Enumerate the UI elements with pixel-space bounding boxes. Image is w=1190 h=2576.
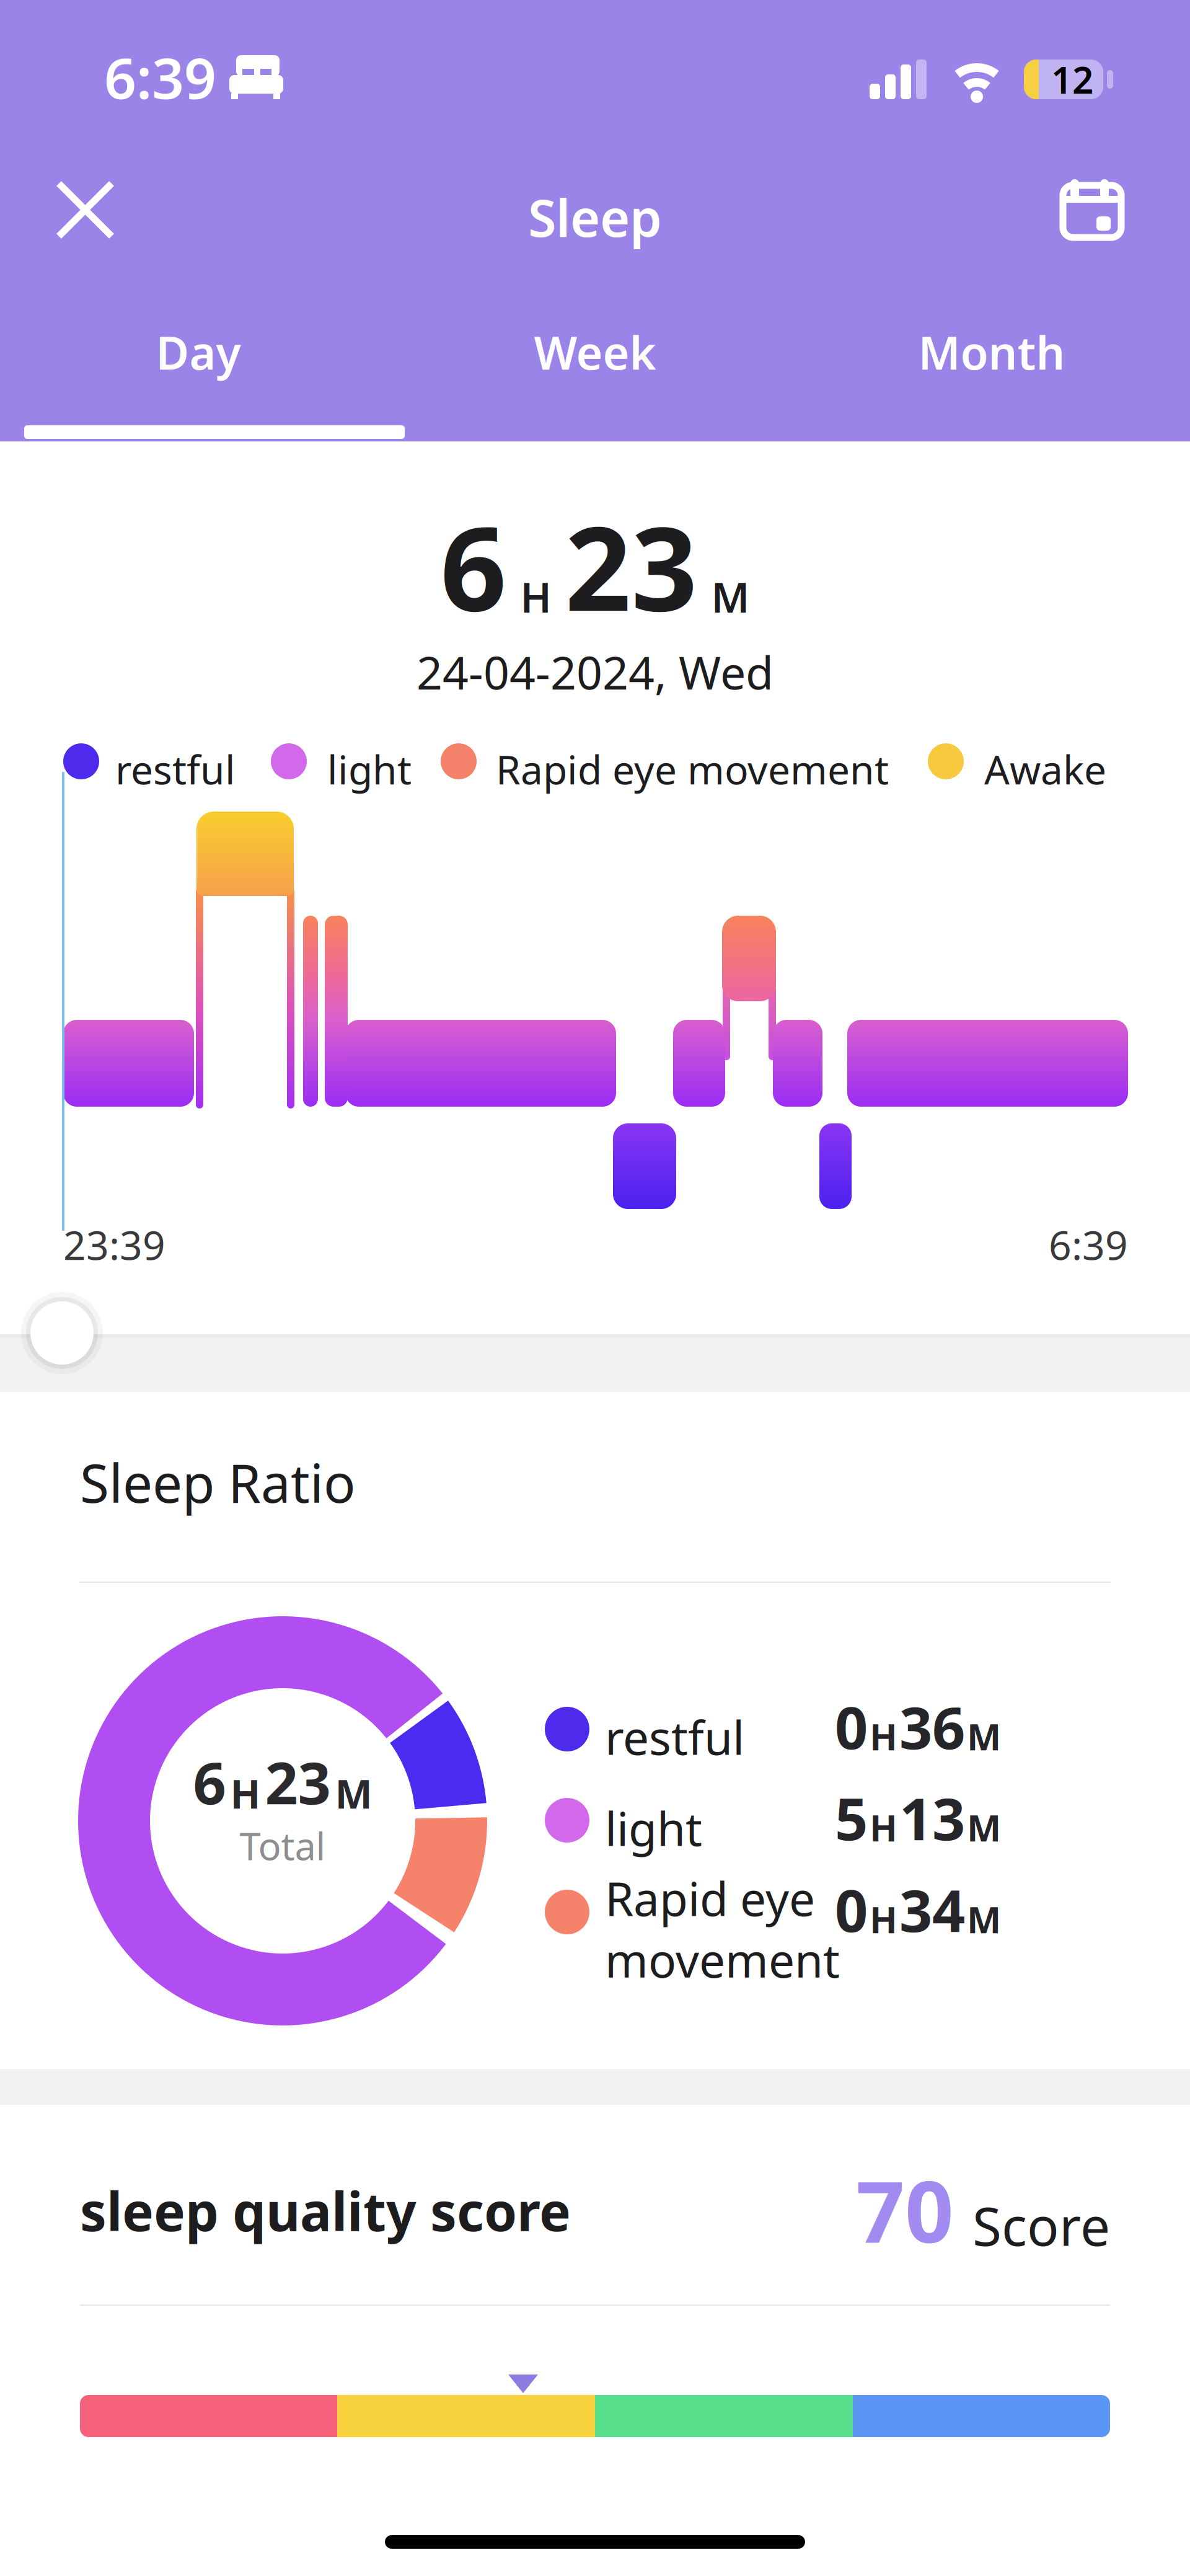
- staticText: sleep quality score: [80, 2175, 571, 2246]
- staticText: 36: [899, 1688, 965, 1765]
- staticText: H: [230, 1767, 261, 1820]
- staticText: 6: [440, 489, 507, 643]
- staticText: M: [711, 569, 750, 624]
- staticText: 24-04-2024, Wed: [416, 642, 773, 702]
- staticText: H: [520, 569, 551, 624]
- staticText: Sleep: [528, 183, 662, 251]
- staticText: light: [327, 743, 412, 795]
- button[interactable]: Month: [0, 0, 397, 60]
- staticText: M: [967, 1803, 1001, 1851]
- staticText: Sleep Ratio: [80, 1447, 356, 1517]
- staticText: M: [967, 1895, 1001, 1943]
- staticText: 13: [899, 1779, 965, 1856]
- staticText: Month: [918, 322, 1065, 382]
- button[interactable]: Day: [0, 0, 397, 60]
- staticText: 6:39: [1049, 1218, 1128, 1271]
- staticText: 5: [835, 1779, 868, 1856]
- staticText: Rapid eye: [605, 1867, 815, 1929]
- staticText: Week: [534, 322, 656, 382]
- staticText: 0: [835, 1688, 868, 1765]
- staticText: H: [870, 1803, 897, 1851]
- staticText: light: [605, 1797, 702, 1859]
- staticText: M: [967, 1712, 1001, 1760]
- staticText: Score: [972, 2190, 1110, 2260]
- staticText: 6:39: [104, 40, 216, 114]
- staticText: restful: [115, 743, 236, 795]
- staticText: movement: [605, 1929, 840, 1990]
- staticText: H: [870, 1895, 897, 1943]
- staticText: Day: [156, 322, 241, 382]
- staticText: 0: [835, 1871, 868, 1948]
- staticText: 34: [899, 1871, 965, 1948]
- staticText: 6: [193, 1743, 226, 1820]
- staticText: 23:39: [63, 1218, 165, 1271]
- staticText: 23: [265, 1743, 331, 1820]
- staticText: 70: [856, 2153, 954, 2266]
- staticText: Rapid eye movement: [496, 743, 889, 795]
- staticText: H: [870, 1712, 897, 1760]
- staticText: Awake: [984, 743, 1106, 795]
- staticText: 12: [1051, 55, 1093, 104]
- staticText: M: [335, 1767, 372, 1820]
- staticText: Total: [240, 1820, 326, 1871]
- button[interactable]: Week: [0, 0, 397, 60]
- staticText: 23: [565, 489, 698, 643]
- staticText: restful: [605, 1706, 744, 1768]
